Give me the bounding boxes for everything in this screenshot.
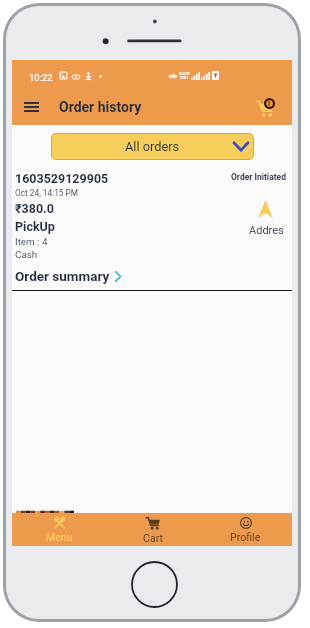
staticText: Addres <box>249 224 284 237</box>
staticText: Profile <box>230 531 261 543</box>
staticText: ₹380.0 <box>15 201 54 216</box>
button[interactable]: Profile <box>199 513 292 546</box>
staticText: Order Initiated <box>231 172 286 182</box>
staticText: Item : 4 <box>15 236 48 247</box>
staticText: PickUp <box>15 219 55 234</box>
button[interactable]: All orders <box>51 133 254 160</box>
staticText: Menu <box>46 531 73 543</box>
button[interactable]: Menu <box>12 513 106 546</box>
staticText: Cart <box>143 532 163 544</box>
staticText: Cash <box>15 249 38 260</box>
staticText: VoLTE <box>179 71 190 75</box>
staticText: LTE1 <box>180 75 189 79</box>
button[interactable]: Cart, 1 item <box>252 93 288 129</box>
staticText: All orders <box>125 139 180 154</box>
button[interactable]: Order summary <box>15 267 125 285</box>
staticText: Oct 24, 14:15 PM <box>15 188 79 198</box>
button[interactable]: Open navigation menu <box>13 89 49 125</box>
staticText: 1 <box>267 100 272 108</box>
staticText: Order summary <box>15 268 110 284</box>
staticText: 1603529129905 <box>15 171 109 186</box>
button[interactable]: Cart <box>106 513 199 546</box>
button[interactable]: 1603529129905 <box>12 168 292 356</box>
staticText: Order history <box>59 99 142 115</box>
staticText: 10:22 <box>29 72 53 83</box>
